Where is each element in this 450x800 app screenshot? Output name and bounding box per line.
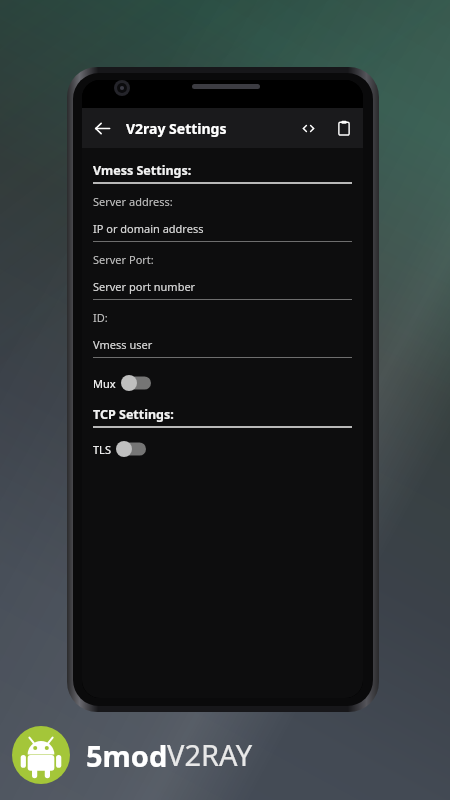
staticText: Server address:	[93, 194, 173, 209]
button[interactable]: Vmess user	[93, 337, 352, 358]
staticText: TLS	[93, 442, 111, 457]
staticText: Vmess user	[93, 337, 153, 352]
staticText: V2ray Settings	[126, 119, 227, 138]
staticText: IP or domain address	[93, 221, 204, 236]
staticText: Mux	[93, 376, 116, 391]
staticText: ID:	[93, 310, 108, 325]
staticText: 5mod	[86, 736, 168, 775]
staticText: Server Port:	[93, 252, 154, 267]
staticText: TCP Settings:	[93, 406, 174, 423]
button[interactable]: IP or domain address	[93, 221, 352, 242]
button[interactable]: TLS	[93, 436, 146, 462]
button[interactable]: Back	[82, 108, 122, 148]
button[interactable]: Mux	[93, 370, 151, 396]
staticText: Server port number	[93, 279, 196, 294]
button[interactable]: Edit as code	[291, 111, 325, 145]
button[interactable]: Server port number	[93, 279, 352, 300]
staticText: V2RAY	[167, 735, 253, 774]
staticText: Vmess Settings:	[93, 162, 192, 179]
button[interactable]: Paste from clipboard	[325, 109, 363, 147]
